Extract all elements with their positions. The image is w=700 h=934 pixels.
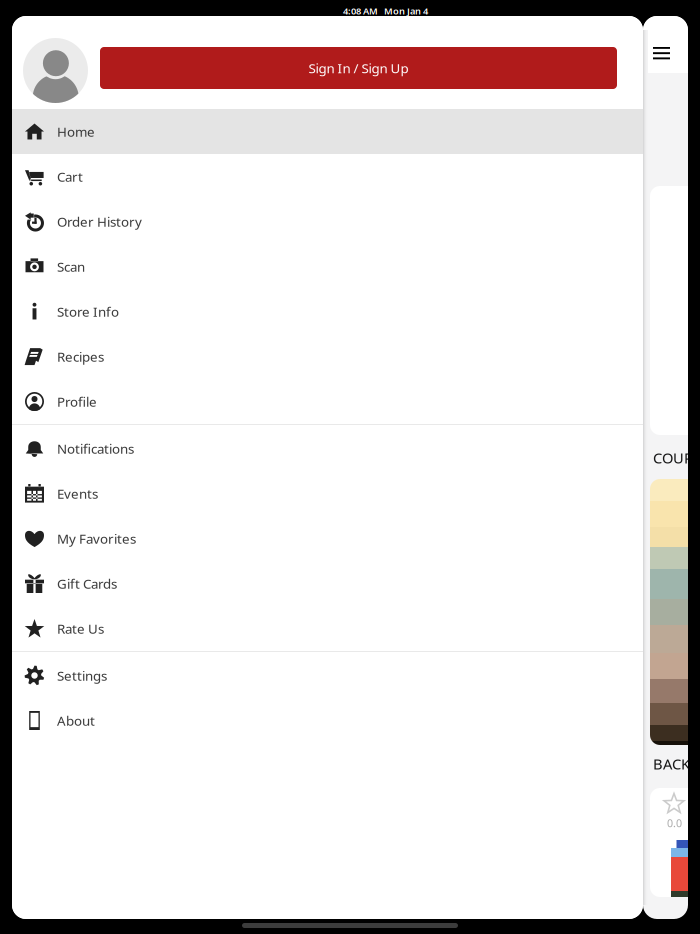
button[interactable]: About	[12, 698, 643, 743]
staticText: Rate Us	[57, 620, 104, 637]
button[interactable]: Gift Cards	[12, 561, 643, 606]
staticText: Notifications	[57, 440, 134, 457]
button[interactable]: Menu	[643, 16, 700, 73]
button[interactable]: Notifications	[12, 426, 643, 471]
button[interactable]: Cart	[12, 154, 643, 199]
staticText: 4:08 AM	[343, 5, 378, 17]
button[interactable]: Profile	[12, 379, 643, 424]
staticText: COUPONS	[653, 448, 700, 467]
button[interactable]: Settings	[12, 653, 643, 698]
staticText: 0.0	[667, 816, 682, 830]
button[interactable]: Rate Us	[12, 606, 643, 651]
button[interactable]: Featured	[650, 186, 700, 435]
button[interactable]: Events	[12, 471, 643, 516]
button[interactable]: Scan	[12, 244, 643, 289]
button[interactable]: Coupon	[650, 479, 700, 745]
staticText: Store Info	[57, 303, 119, 320]
button[interactable]: Order History	[12, 199, 643, 244]
staticText: Recipes	[57, 348, 104, 365]
button[interactable]: Sign In / Sign Up	[100, 47, 617, 89]
button[interactable]: My Favorites	[12, 516, 643, 561]
button[interactable]: Recipes	[12, 334, 643, 379]
staticText: About	[57, 712, 95, 729]
staticText: Mon Jan 4	[384, 5, 428, 17]
staticText: Settings	[57, 667, 107, 684]
button[interactable]: Product	[650, 788, 700, 897]
button[interactable]: Store Info	[12, 289, 643, 334]
staticText: Sign In / Sign Up	[308, 59, 408, 77]
button[interactable]: Account	[23, 38, 88, 103]
button[interactable]: Home	[12, 109, 643, 154]
staticText: Gift Cards	[57, 575, 117, 592]
staticText: Home	[57, 123, 95, 140]
staticText: Cart	[57, 168, 83, 185]
staticText: Order History	[57, 213, 142, 230]
staticText: BACK TO SCHOOL	[653, 754, 700, 773]
staticText: Scan	[57, 258, 85, 275]
staticText: Profile	[57, 393, 97, 410]
staticText: My Favorites	[57, 530, 136, 547]
staticText: Events	[57, 485, 98, 502]
